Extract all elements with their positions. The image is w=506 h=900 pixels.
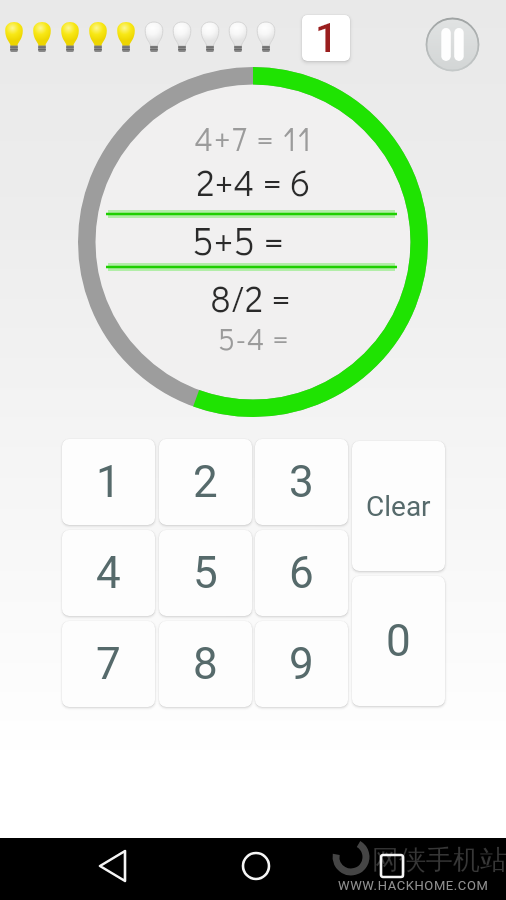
staticText: 1	[315, 15, 338, 61]
button[interactable]	[88, 838, 138, 894]
staticText: 5	[193, 547, 218, 599]
staticText: 2	[193, 456, 218, 508]
button[interactable]: 0	[352, 576, 445, 706]
button[interactable]: 6	[255, 530, 348, 616]
button[interactable]	[425, 17, 480, 72]
staticText: WWW.HACKHOME.COM	[338, 878, 489, 893]
staticText: 7	[96, 638, 121, 690]
button[interactable]: Clear	[352, 441, 445, 571]
staticText: 2+4 = 6	[196, 158, 311, 205]
staticText: 6	[289, 547, 314, 599]
button[interactable]: 3	[255, 439, 348, 525]
staticText: 4	[96, 547, 121, 599]
staticText: Clear	[366, 490, 431, 523]
staticText: 8/2 =	[210, 274, 291, 321]
button[interactable]: 2	[159, 439, 252, 525]
button[interactable]: 7	[62, 621, 155, 707]
button[interactable]: 9	[255, 621, 348, 707]
staticText: 4+7 = 11	[194, 118, 313, 160]
staticText: 8	[193, 638, 218, 690]
staticText: 5-4 =	[218, 319, 289, 358]
button[interactable]	[367, 838, 417, 894]
staticText: 1	[96, 456, 121, 508]
button[interactable]: 1	[62, 439, 155, 525]
staticText: 9	[289, 638, 314, 690]
button[interactable]	[228, 838, 278, 894]
button[interactable]: 5	[159, 530, 252, 616]
staticText: 网侠手机站	[372, 843, 506, 877]
staticText: 0	[386, 615, 411, 667]
staticText: 3	[289, 456, 314, 508]
staticText: 5+5 =	[192, 215, 284, 265]
button[interactable]: 8	[159, 621, 252, 707]
button[interactable]: 4	[62, 530, 155, 616]
